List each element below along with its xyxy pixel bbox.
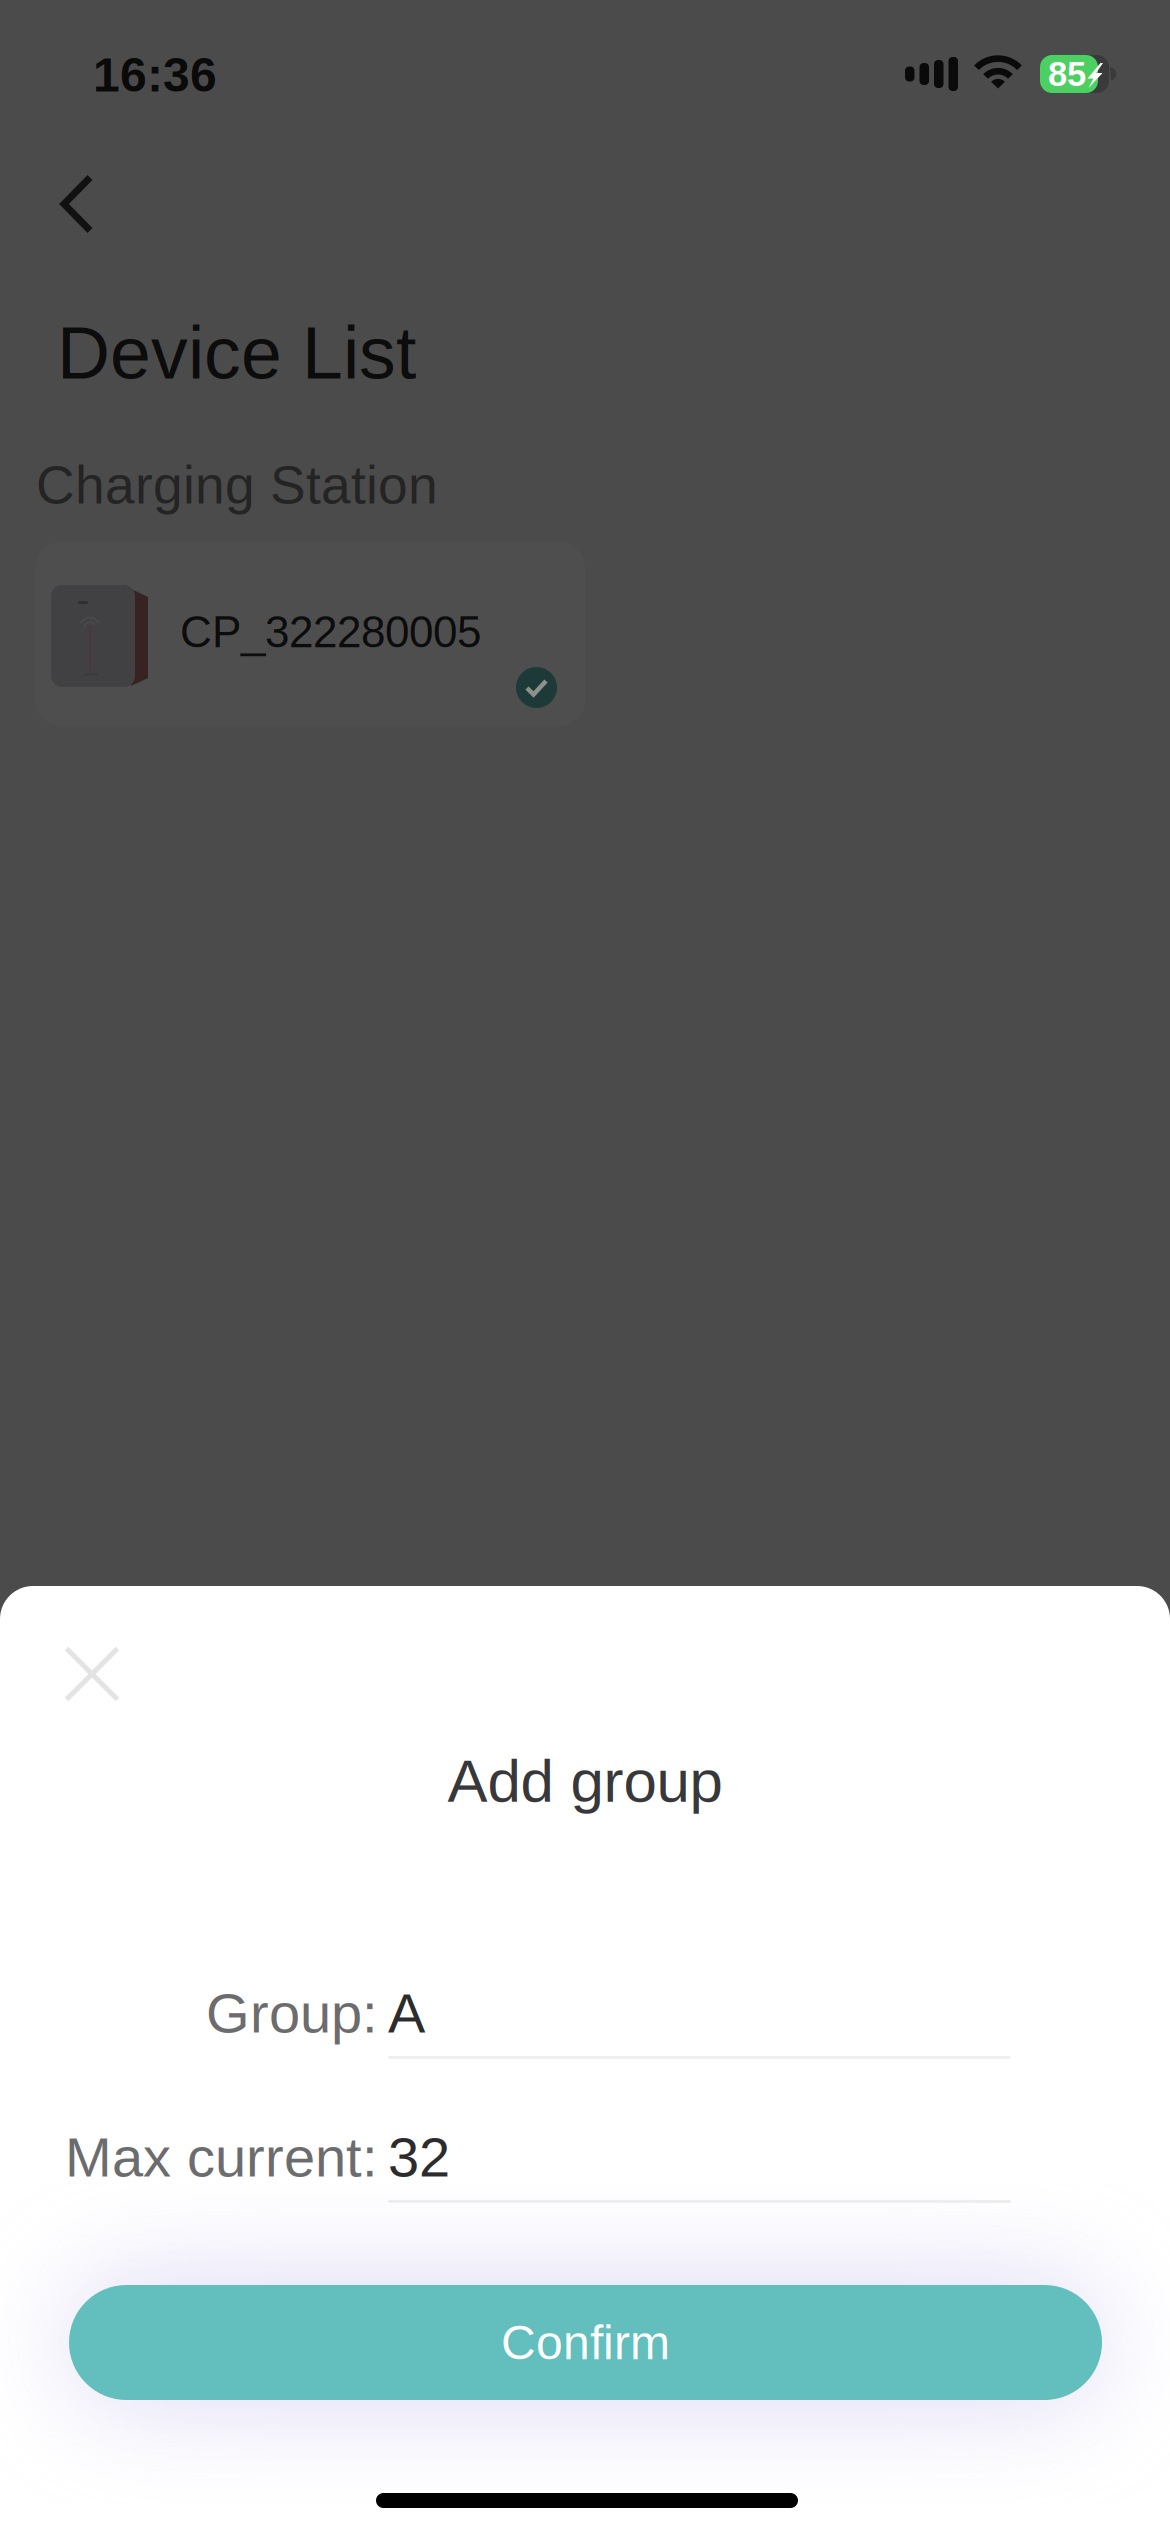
staticText: A [388, 1982, 425, 2044]
staticText: Max current: [65, 2126, 378, 2188]
staticText: Add group [447, 1747, 722, 1814]
staticText: 16:36 [93, 48, 217, 102]
staticText: CP_322280005 [180, 607, 481, 657]
staticText: Device List [57, 312, 416, 394]
button[interactable]: Confirm [69, 2285, 1102, 2400]
button[interactable]: Max current: 32 [388, 2131, 1011, 2203]
button[interactable]: Group: A [388, 1987, 1011, 2059]
staticText: Charging Station [36, 455, 438, 515]
staticText: Confirm [501, 2316, 670, 2369]
staticText: Group: [206, 1982, 378, 2044]
staticText: 85 [1048, 55, 1086, 93]
button[interactable]: Back [34, 148, 120, 260]
button[interactable]: Close [40, 1622, 144, 1726]
button[interactable]: CP_322280005 [35, 542, 585, 726]
staticText: 32 [388, 2126, 450, 2188]
